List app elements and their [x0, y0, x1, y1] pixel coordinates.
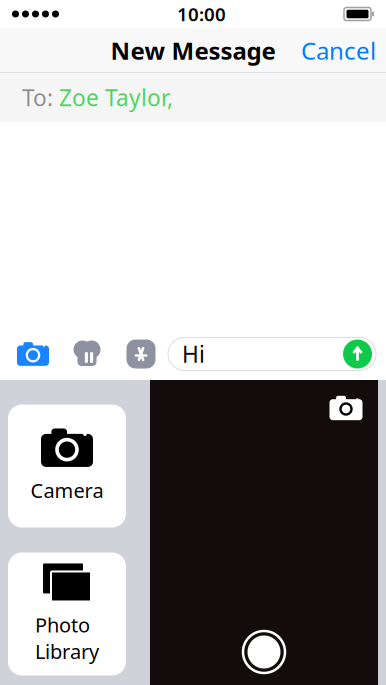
staticText: Cancel: [301, 35, 376, 66]
button[interactable]: Camera: [8, 404, 126, 527]
staticText: Camera: [30, 477, 103, 504]
staticText: Photo Library: [35, 611, 99, 664]
staticText: To:: [22, 82, 53, 112]
button[interactable]: Take photo: [237, 625, 291, 679]
staticText: New Message: [110, 35, 275, 66]
staticText: Hi: [182, 339, 205, 369]
staticText: Zoe Taylor,: [59, 82, 173, 112]
button[interactable]: Switch camera: [326, 392, 366, 424]
button[interactable]: Photo Library: [8, 552, 126, 675]
button[interactable]: Cancel: [291, 27, 386, 74]
staticText: 10:00: [177, 2, 226, 26]
button[interactable]: Digital Touch: [60, 332, 114, 376]
button[interactable]: Hi: [168, 337, 386, 370]
button[interactable]: Camera: [6, 332, 60, 376]
button[interactable]: To:: [0, 73, 386, 122]
button[interactable]: App Store: [114, 332, 168, 376]
